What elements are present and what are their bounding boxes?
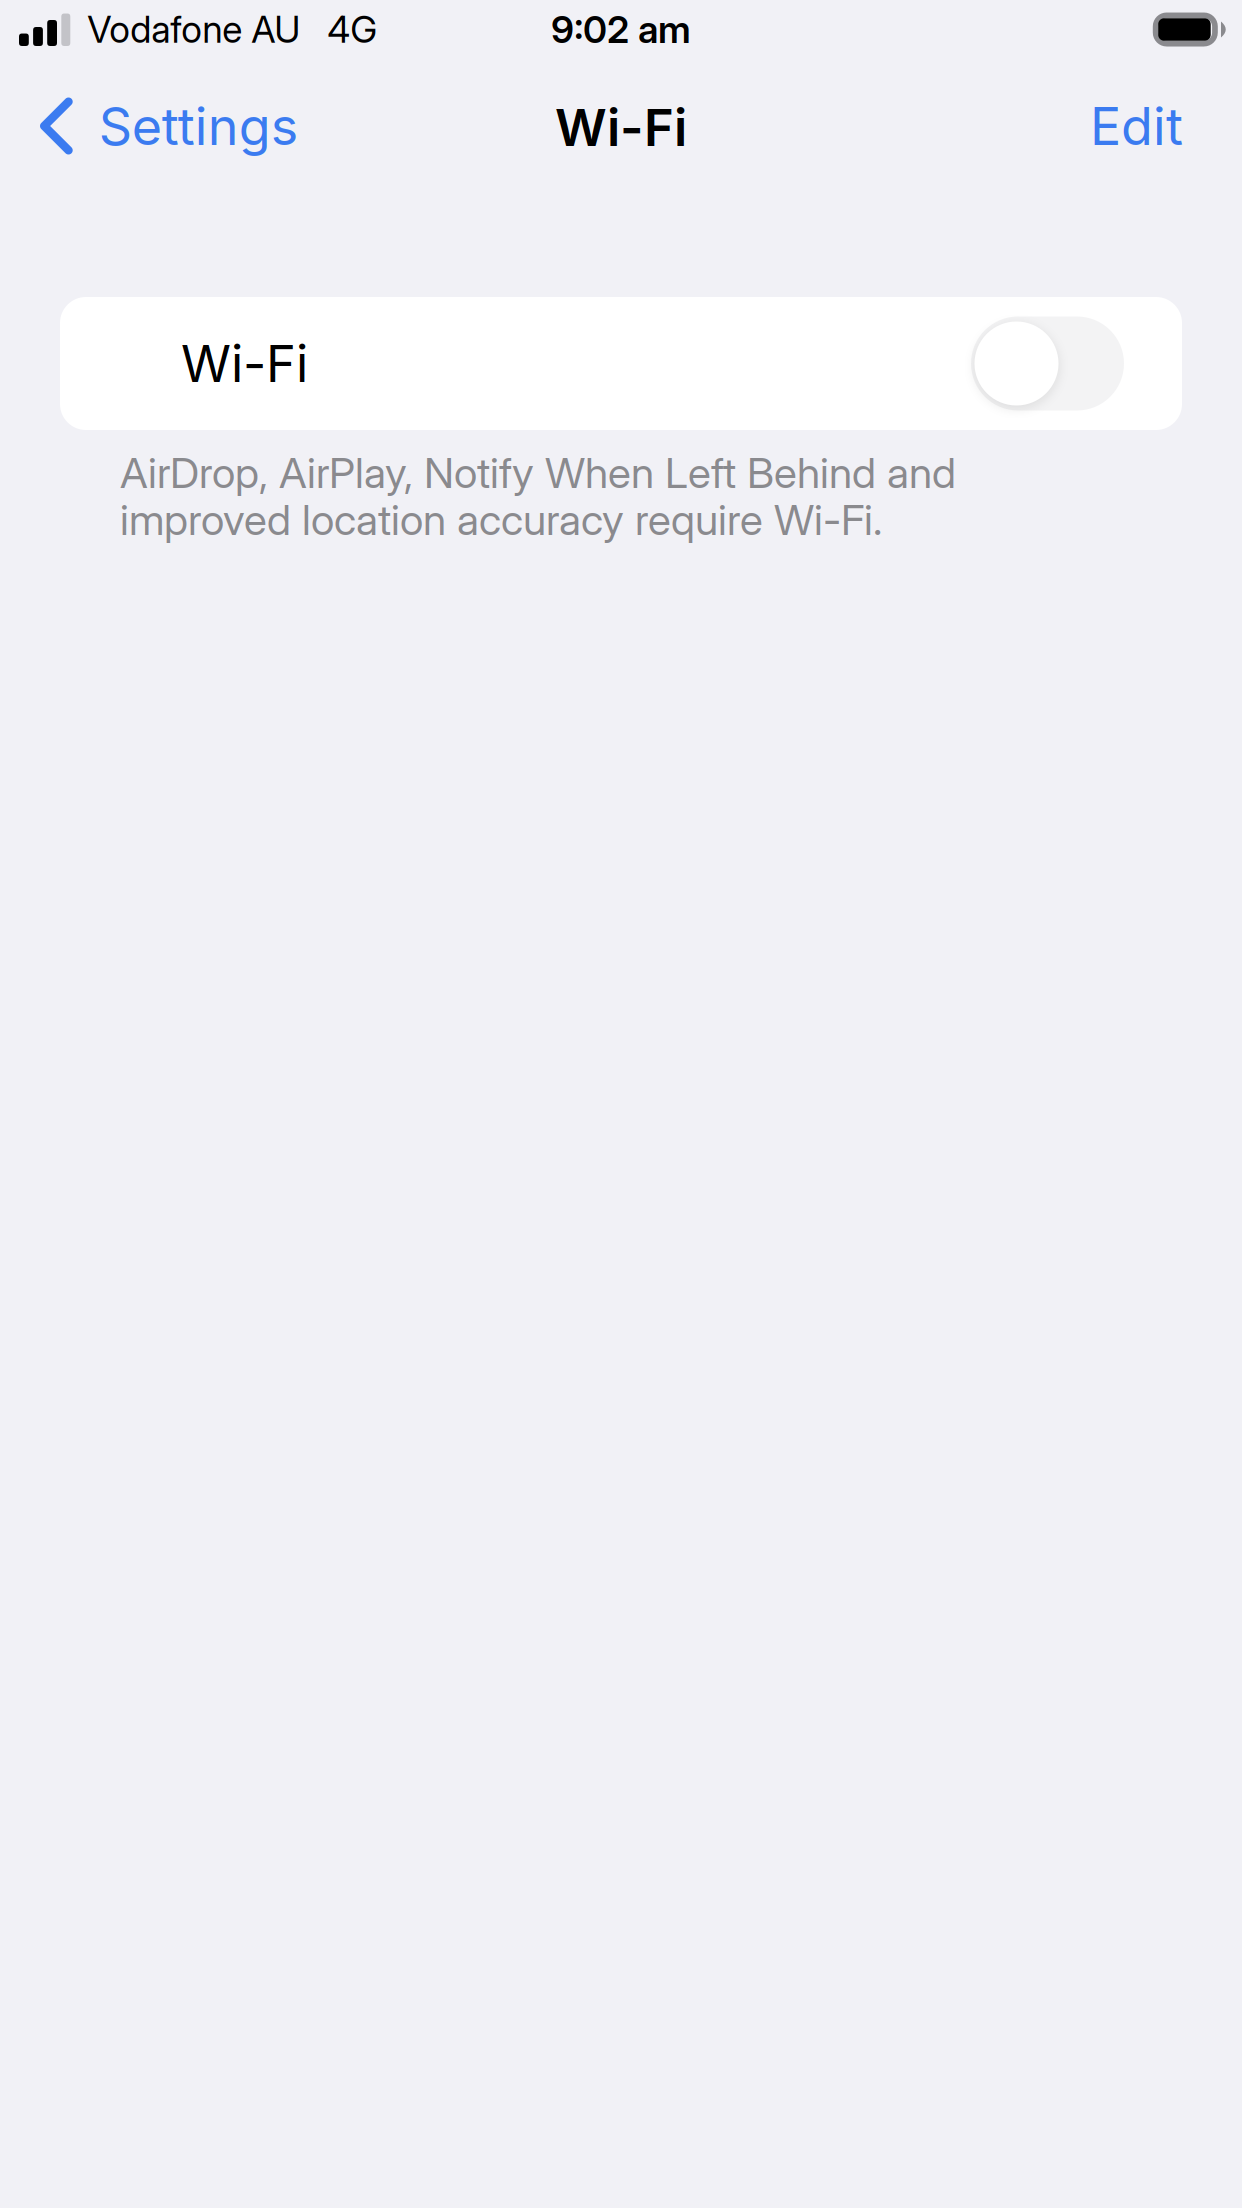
button[interactable]: Wi-Fi, off <box>971 316 1124 410</box>
button[interactable]: Edit <box>1090 76 1183 179</box>
staticText: Wi-Fi <box>181 333 308 394</box>
staticText: Vodafone AU 4G <box>87 7 377 52</box>
staticText: 9:02 am <box>551 7 691 52</box>
staticText: improved location accuracy require Wi-Fi… <box>120 494 882 545</box>
button[interactable]: Settings <box>40 76 298 179</box>
staticText: AirDrop, AirPlay, Notify When Left Behin… <box>120 447 956 498</box>
staticText: Settings <box>99 94 298 157</box>
staticText: Wi-Fi <box>555 97 687 158</box>
staticText: Edit <box>1090 94 1183 157</box>
